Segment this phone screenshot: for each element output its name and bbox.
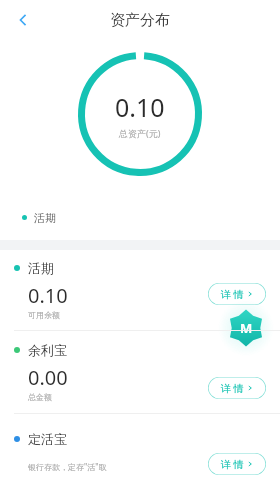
button[interactable]: Back — [6, 3, 40, 37]
staticText: 0.10 — [28, 282, 68, 309]
staticText: 定活宝 — [28, 431, 67, 447]
staticText: 详 情 — [221, 287, 244, 301]
staticText: 活期 — [34, 211, 56, 225]
button[interactable]: 详 情 — [208, 377, 266, 399]
staticText: 详 情 — [221, 381, 244, 395]
staticText: 详 情 — [221, 457, 244, 471]
staticText: 资产分布 — [110, 11, 170, 30]
staticText: 活期 — [28, 260, 54, 276]
staticText: 0.10 — [115, 90, 165, 124]
button[interactable]: 详 情 — [208, 453, 266, 475]
staticText: 总资产(元) — [119, 127, 161, 139]
staticText: 余利宝 — [28, 342, 67, 358]
staticText: 银行存款，定存"活"取 — [28, 461, 107, 472]
staticText: 总金额 — [28, 392, 52, 402]
staticText: M — [240, 319, 253, 337]
staticText: 0.00 — [28, 364, 68, 391]
staticText: 可用余额 — [28, 310, 60, 320]
button[interactable]: 详 情 — [208, 283, 266, 305]
